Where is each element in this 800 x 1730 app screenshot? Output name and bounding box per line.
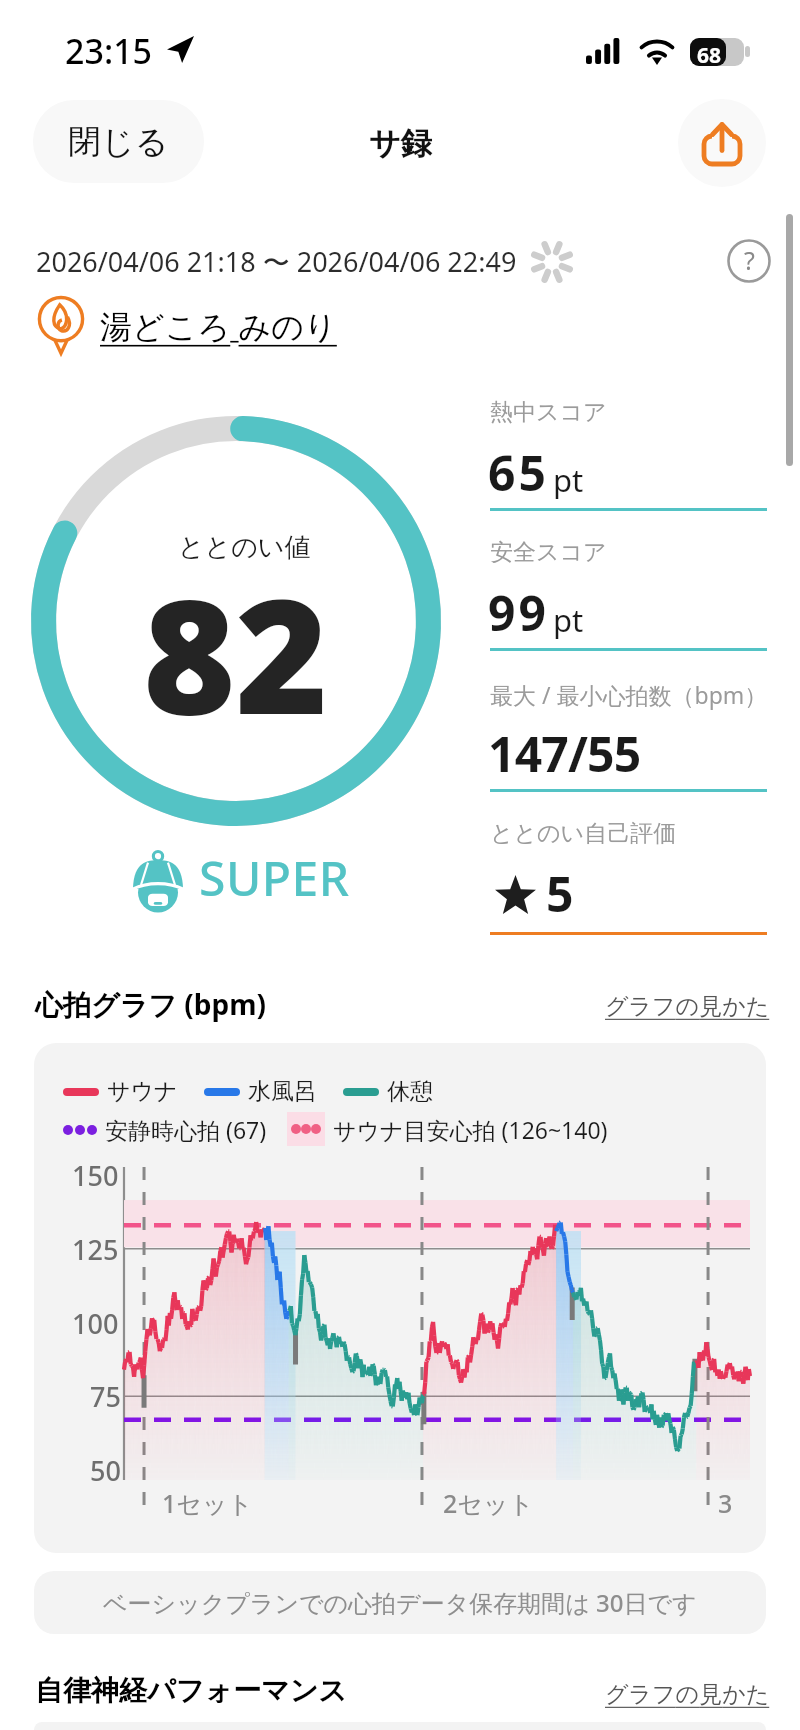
staticText: ととのい自己評価 <box>490 819 677 848</box>
staticText: 75 <box>90 1378 121 1415</box>
staticText: 125 <box>72 1231 119 1268</box>
staticText: 99 <box>488 580 549 645</box>
button[interactable]: グラフの見かた <box>605 1680 770 1709</box>
staticText: 50 <box>90 1452 121 1489</box>
staticText: 2026/04/06 21:18 〜 2026/04/06 22:49 <box>36 243 517 280</box>
staticText: 150 <box>72 1157 119 1194</box>
staticText: 安全スコア <box>490 538 607 567</box>
staticText: SUPER <box>199 845 350 910</box>
button[interactable]: 閉じる <box>33 100 204 183</box>
staticText: サウナ <box>107 1077 178 1106</box>
staticText: 閉じる <box>68 121 169 163</box>
staticText: 5 <box>546 861 574 926</box>
staticText: サウナ目安心拍 (126~140) <box>333 1114 608 1145</box>
button[interactable]: 湯どころ みのり <box>34 296 337 356</box>
button[interactable]: Share <box>678 99 766 187</box>
staticText: 147/55 <box>488 721 641 786</box>
staticText: 2セット <box>443 1486 535 1520</box>
staticText: 23:15 <box>65 28 153 74</box>
staticText: 安静時心拍 (67) <box>105 1114 267 1145</box>
staticText: 3 <box>718 1486 733 1520</box>
staticText: 休憩 <box>387 1077 433 1106</box>
button[interactable]: グラフの見かた <box>605 992 770 1021</box>
staticText: 68 <box>697 41 722 69</box>
staticText: 熱中スコア <box>490 398 607 427</box>
staticText: 自律神経パフォーマンス <box>35 1673 347 1708</box>
staticText: ? <box>744 243 755 277</box>
staticText: サ録 <box>369 124 432 163</box>
staticText: グラフの見かた <box>605 1680 770 1709</box>
staticText: pt <box>553 599 584 641</box>
staticText: 1セット <box>162 1486 254 1520</box>
staticText: 最大 / 最小心拍数（bpm） <box>490 679 768 710</box>
staticText: pt <box>553 459 584 501</box>
staticText: 心拍グラフ (bpm) <box>35 985 266 1023</box>
staticText: 100 <box>72 1305 119 1342</box>
staticText: 水風呂 <box>248 1077 317 1106</box>
staticText: 82 <box>143 545 329 760</box>
staticText: ととのい値 <box>178 531 311 564</box>
staticText: 65 <box>488 440 549 505</box>
staticText: グラフの見かた <box>605 992 770 1021</box>
staticText: 湯どころ みのり <box>100 304 337 348</box>
button[interactable]: Help <box>727 239 771 283</box>
staticText: ベーシックプランでの心拍データ保存期間は 30日です <box>103 1586 697 1619</box>
